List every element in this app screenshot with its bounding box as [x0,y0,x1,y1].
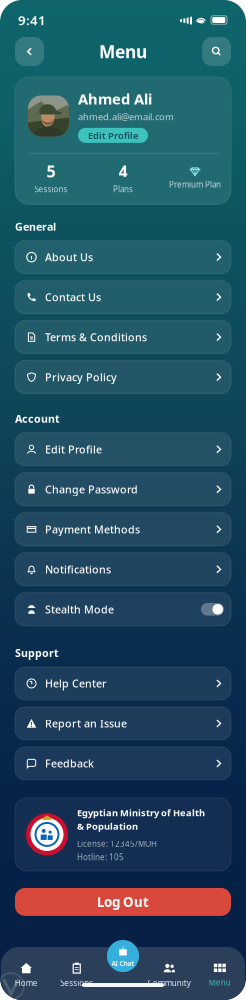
button[interactable]: Report an Issue [15,707,231,740]
staticText: 5 [46,161,55,182]
button[interactable]: AI Chat [106,939,140,973]
button[interactable]: Search [202,37,231,66]
staticText: 9:41 [18,11,46,29]
button[interactable]: Stealth Mode [15,593,231,626]
staticText: Help Center [45,676,107,691]
button[interactable]: Edit Profile [78,128,148,143]
staticText: Support [15,646,59,660]
staticText: ahmed.ali@email.com [78,110,174,123]
staticText: Premium Plan [169,179,221,190]
staticText: Sessions [60,978,93,988]
staticText: AI Chat [111,959,134,968]
staticText: Log Out [97,893,149,911]
button[interactable]: Notifications [15,553,231,586]
button[interactable]: Change Password [15,473,231,506]
staticText: Plans [113,184,133,194]
staticText: Community [148,978,191,988]
staticText: Account [15,412,60,426]
button[interactable]: Payment Methods [15,513,231,546]
button[interactable]: Back [15,37,44,66]
staticText: Menu [209,977,231,988]
button[interactable]: Feedback [15,747,231,780]
staticText: License: 12345/MOH [77,838,157,849]
staticText: General [15,219,56,234]
staticText: Menu [99,40,147,63]
button[interactable]: Menu [194,958,245,992]
button[interactable]: Contact Us [15,281,231,314]
staticText: Report an Issue [45,716,127,731]
staticText: Privacy Policy [45,370,117,384]
button[interactable]: Privacy Policy [15,361,231,394]
staticText: About Us [45,250,93,264]
button[interactable]: Terms & Conditions [15,321,231,354]
staticText: Notifications [45,562,111,576]
staticText: Feedback [45,756,94,771]
staticText: Change Password [45,482,138,496]
staticText: 4 [118,161,127,182]
staticText: Edit Profile [45,442,102,456]
staticText: Payment Methods [45,522,140,536]
button[interactable]: Edit Profile [15,433,231,466]
staticText: Contact Us [45,290,101,304]
staticText: Egyptian Ministry of Health [77,806,205,819]
staticText: Ahmed Ali [78,89,152,108]
staticText: & Population [77,820,138,832]
button[interactable]: Community [144,958,194,992]
button[interactable]: Home [1,958,51,992]
staticText: Hotline: 105 [77,852,124,862]
staticText: Terms & Conditions [45,330,147,344]
staticText: Stealth Mode [45,602,114,616]
button[interactable]: Log Out [15,888,231,916]
staticText: Home [15,978,38,988]
button[interactable]: Sessions [51,958,102,992]
staticText: Edit Profile [88,129,138,142]
button[interactable]: About Us [15,241,231,274]
staticText: Sessions [34,184,67,194]
button[interactable]: Help Center [15,667,231,700]
